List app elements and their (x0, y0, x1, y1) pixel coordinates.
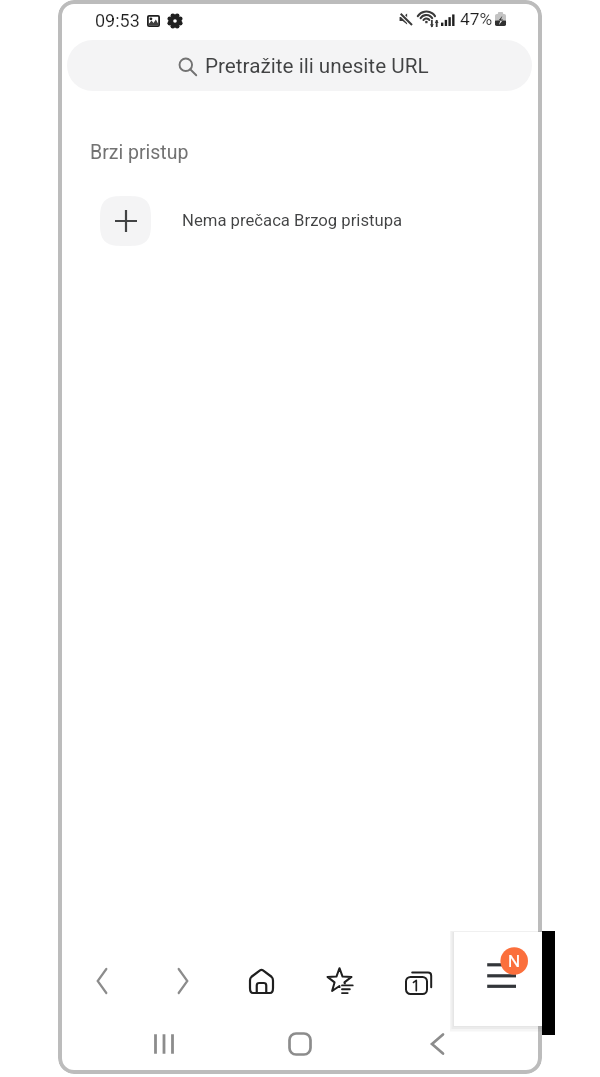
button[interactable]: Tabs (391, 952, 445, 1008)
staticText: 47% (460, 9, 493, 29)
button[interactable]: Home (273, 1021, 327, 1067)
staticText: Pretražite ili unesite URL (205, 54, 429, 78)
button[interactable]: Pretražite ili unesite URL (67, 40, 532, 91)
button[interactable]: Recents (137, 1021, 191, 1067)
button[interactable]: Home (234, 953, 288, 1009)
button[interactable]: Back (75, 953, 129, 1009)
button[interactable]: Menu (475, 953, 529, 1009)
button[interactable]: Back (410, 1021, 464, 1067)
button[interactable]: Forward (156, 953, 210, 1009)
staticText: 09:53 (95, 10, 140, 31)
staticText: Nema prečaca Brzog pristupa (182, 211, 403, 231)
staticText: Brzi pristup (90, 141, 189, 164)
button[interactable]: Bookmarks (313, 953, 367, 1009)
button[interactable]: Nema prečaca Brzog pristupa (100, 196, 403, 246)
button[interactable]: Menu (454, 932, 542, 1026)
staticText: N (508, 951, 521, 971)
